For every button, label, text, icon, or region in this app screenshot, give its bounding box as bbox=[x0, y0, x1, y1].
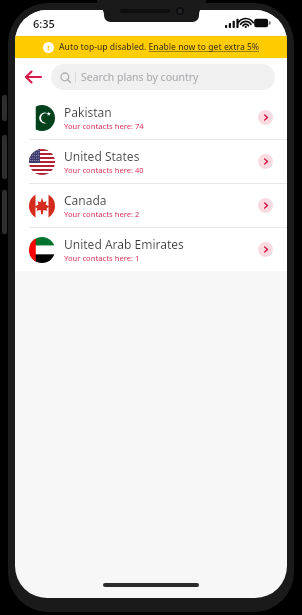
button[interactable]: United States bbox=[15, 140, 287, 183]
button[interactable]: Back bbox=[15, 58, 51, 96]
staticText: United Arab Emirates bbox=[64, 236, 184, 252]
staticText: Pakistan bbox=[64, 104, 112, 120]
staticText: United States bbox=[64, 148, 140, 164]
button[interactable]: Pakistan bbox=[15, 96, 287, 139]
button[interactable]: United Arab Emirates bbox=[15, 228, 287, 271]
button[interactable]: Open Pakistan bbox=[258, 110, 273, 125]
staticText: Your contacts here: 1 bbox=[64, 253, 140, 263]
staticText: Canada bbox=[64, 192, 107, 208]
staticText: Your contacts here: 74 bbox=[64, 121, 144, 131]
button[interactable]: Open United Arab Emirates bbox=[258, 242, 273, 257]
staticText: Your contacts here: 2 bbox=[64, 209, 140, 219]
button[interactable]: Auto top-up disabled. Enable now to get … bbox=[15, 36, 287, 58]
staticText: 6:35 bbox=[33, 16, 55, 31]
button[interactable]: Open Canada bbox=[258, 198, 273, 213]
staticText: Auto top-up disabled. Enable now to get … bbox=[59, 41, 260, 53]
button[interactable]: Open United States bbox=[258, 154, 273, 169]
staticText: Your contacts here: 40 bbox=[64, 165, 144, 175]
staticText: Search plans by country bbox=[81, 70, 199, 84]
button[interactable]: Canada bbox=[15, 184, 287, 227]
button[interactable]: Search plans by country bbox=[51, 64, 275, 90]
